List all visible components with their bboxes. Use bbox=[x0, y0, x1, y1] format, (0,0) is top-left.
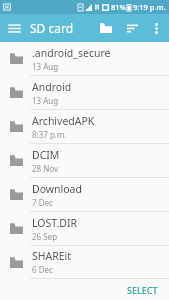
staticText: 28 Nov bbox=[32, 163, 59, 174]
staticText: 9:19 p.m. bbox=[133, 2, 166, 12]
button[interactable]: More options bbox=[145, 17, 167, 39]
staticText: 13 Aug bbox=[32, 61, 59, 72]
staticText: ArchivedAPK bbox=[32, 114, 95, 128]
staticText: 13 Aug bbox=[32, 95, 59, 106]
button[interactable]: .android_secure bbox=[0, 42, 169, 75]
button[interactable]: Sort bbox=[119, 15, 145, 41]
staticText: 7 Dec bbox=[32, 197, 53, 208]
button[interactable]: ArchivedAPK bbox=[0, 110, 169, 143]
staticText: Android bbox=[32, 80, 72, 94]
button[interactable]: Download bbox=[0, 178, 169, 211]
button[interactable]: SHAREit bbox=[0, 246, 169, 278]
button[interactable]: New folder bbox=[93, 15, 119, 41]
staticText: Download bbox=[32, 182, 82, 196]
staticText: DCIM bbox=[32, 148, 60, 162]
staticText: SD card bbox=[30, 20, 74, 36]
button[interactable]: SELECT bbox=[122, 281, 163, 299]
button[interactable]: DCIM bbox=[0, 144, 169, 177]
staticText: SELECT bbox=[127, 284, 158, 296]
button[interactable]: LOST.DIR bbox=[0, 212, 169, 245]
button[interactable]: Android bbox=[0, 76, 169, 109]
staticText: SHAREit bbox=[32, 249, 72, 263]
staticText: 26 Sep bbox=[32, 231, 58, 242]
button[interactable]: Open navigation drawer bbox=[0, 14, 28, 42]
staticText: 6 Dec bbox=[32, 264, 53, 275]
staticText: LOST.DIR bbox=[32, 216, 78, 230]
staticText: .android_secure bbox=[32, 46, 111, 60]
staticText: 81% bbox=[111, 2, 126, 12]
staticText: 8:37 p.m. bbox=[32, 129, 67, 140]
